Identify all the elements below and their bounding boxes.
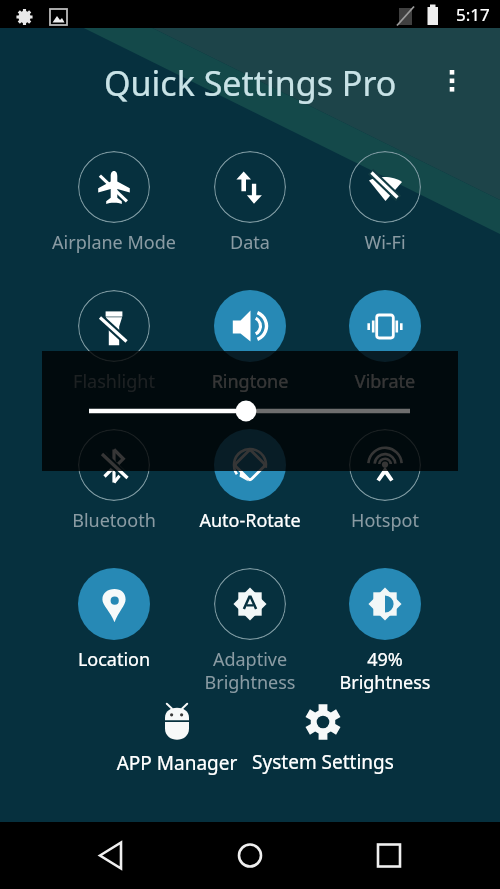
staticText: Bluetooth (39, 508, 189, 533)
staticText: System Settings (238, 749, 408, 775)
button[interactable]: 49% Brightness (310, 568, 460, 678)
staticText: 5:17 (456, 3, 490, 26)
button[interactable]: Hotspot (310, 429, 460, 539)
staticText: Auto-Rotate (175, 508, 325, 533)
staticText: Hotspot (310, 508, 460, 533)
button[interactable]: Adaptive Brightness (175, 568, 325, 678)
button[interactable]: Data (175, 151, 325, 261)
staticText: Vibrate (310, 369, 460, 394)
staticText: 49% Brightness (310, 647, 460, 694)
button[interactable]: More options (436, 64, 468, 96)
button[interactable]: Airplane Mode (39, 151, 189, 261)
button[interactable]: Bluetooth (39, 429, 189, 539)
staticText: Adaptive Brightness (175, 647, 325, 694)
staticText: Location (39, 647, 189, 672)
button[interactable]: Wi-Fi (310, 151, 460, 261)
button[interactable]: System Settings (238, 722, 408, 794)
button[interactable]: APP Manager (92, 723, 262, 795)
button[interactable]: Flashlight (39, 290, 189, 400)
staticText: Quick Settings Pro (104, 60, 397, 106)
staticText: Data (175, 230, 325, 255)
staticText: Airplane Mode (39, 230, 189, 255)
staticText: Ringtone (175, 369, 325, 394)
button[interactable]: Ringtone (175, 290, 325, 400)
staticText: Flashlight (39, 369, 189, 394)
button[interactable]: Location (39, 568, 189, 678)
button[interactable]: Vibrate (310, 290, 460, 400)
staticText: APP Manager (92, 750, 262, 776)
button[interactable]: Auto-Rotate (175, 429, 325, 539)
staticText: Wi-Fi (310, 230, 460, 255)
